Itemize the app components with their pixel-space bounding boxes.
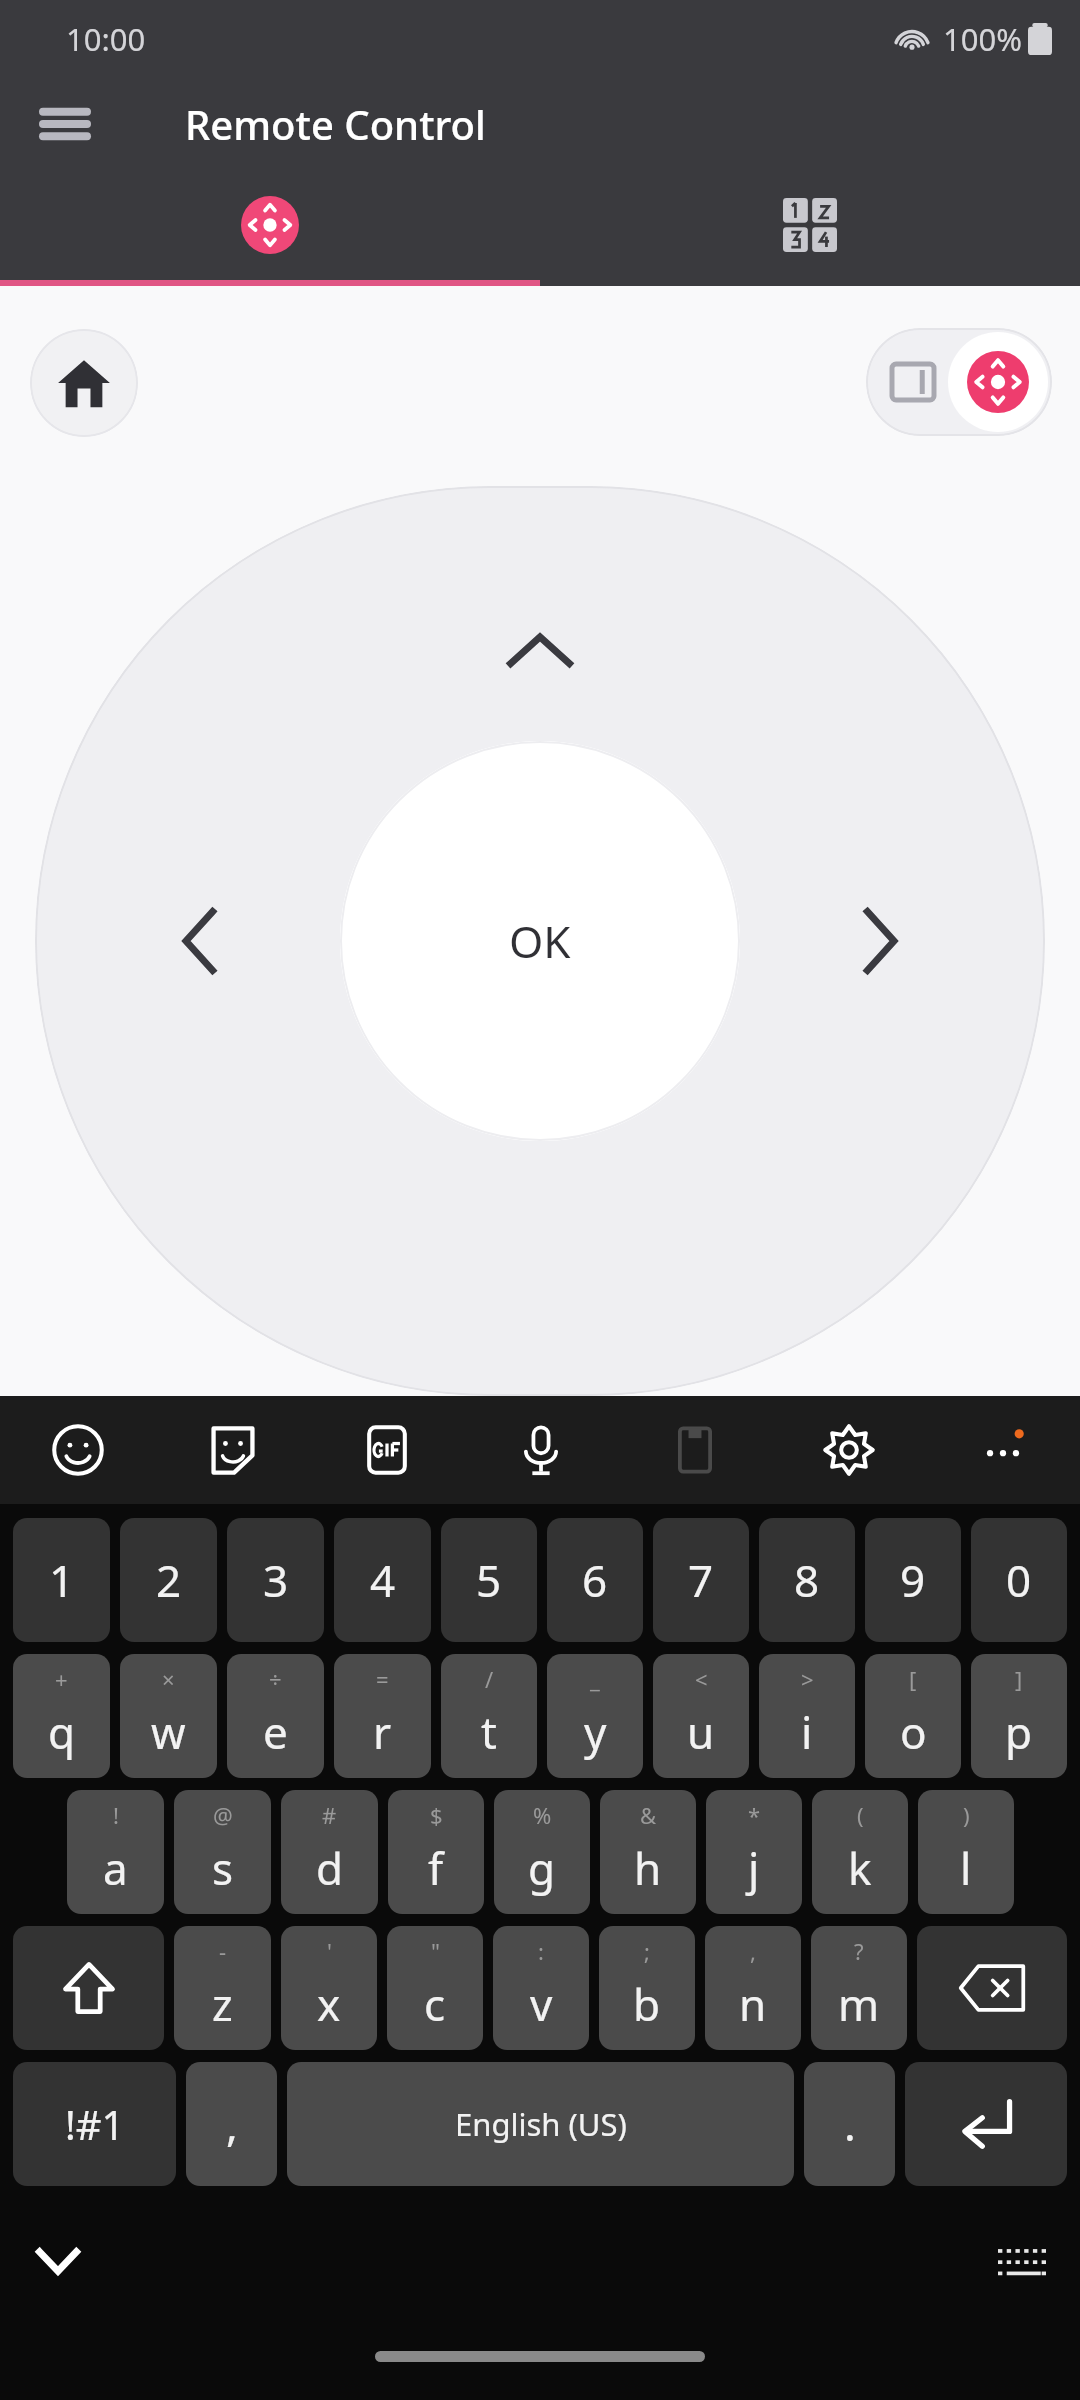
button[interactable]: Control mode toggle [866,328,1052,436]
staticText: w [151,1702,186,1762]
button[interactable]: < [653,1654,749,1778]
button[interactable]: & [600,1790,696,1914]
staticText: f [428,1838,444,1898]
staticText: _ [590,1664,600,1694]
button[interactable]: 9 [865,1518,961,1642]
button[interactable]: OK [340,741,740,1141]
staticText: 6 [582,1550,608,1610]
button[interactable]: * [706,1790,802,1914]
staticText: t [481,1702,497,1762]
button[interactable]: " [387,1926,483,2050]
button[interactable]: 4 [334,1518,431,1642]
button[interactable]: Clipboard [618,1396,772,1504]
button[interactable]: ? [811,1926,907,2050]
button[interactable]: Right [825,886,935,996]
button[interactable]: ; [599,1926,695,2050]
staticText: h [634,1838,662,1898]
button[interactable]: 8 [759,1518,855,1642]
button[interactable]: Menu [36,95,94,153]
staticText: < [695,1664,708,1694]
button[interactable]: ' [281,1926,377,2050]
button[interactable]: 7 [653,1518,749,1642]
staticText: # [322,1800,337,1830]
staticText: u [687,1702,715,1762]
staticText: 2 [156,1550,182,1610]
staticText: : [538,1936,544,1966]
button[interactable]: % [494,1790,590,1914]
button[interactable]: > [759,1654,855,1778]
staticText: v [530,1974,553,2034]
staticText: ! [113,1800,119,1830]
staticText: = [376,1664,389,1694]
button[interactable]: Backspace [917,1926,1067,2050]
staticText: x [317,1974,341,2034]
button[interactable]: , [705,1926,801,2050]
button[interactable]: ) [918,1790,1014,1914]
button[interactable]: Shift [13,1926,164,2050]
staticText: c [424,1974,446,2034]
staticText: % [533,1800,552,1830]
button[interactable]: + [13,1654,110,1778]
staticText: k [848,1838,872,1898]
button[interactable]: English (US) [287,2062,794,2186]
button[interactable]: ! [67,1790,164,1914]
staticText: o [900,1702,927,1762]
staticText: 100% [943,18,1022,60]
staticText: $ [430,1800,443,1830]
button[interactable]: Voice input [464,1396,618,1504]
button[interactable]: ÷ [227,1654,324,1778]
button[interactable]: _ [547,1654,643,1778]
button[interactable]: !#1 [13,2062,176,2186]
button[interactable]: # [281,1790,378,1914]
button[interactable]: Up [485,596,595,706]
button[interactable]: More [926,1396,1080,1504]
button[interactable]: . [804,2062,895,2186]
button[interactable]: ] [971,1654,1067,1778]
staticText: 0 [1006,1550,1032,1610]
button[interactable]: Enter [905,2062,1067,2186]
staticText: " [431,1936,440,1966]
button[interactable]: @ [174,1790,271,1914]
button[interactable]: GIF [310,1396,464,1504]
staticText: ? [854,1936,864,1966]
button[interactable]: Stickers [155,1396,310,1504]
button[interactable]: : [493,1926,589,2050]
button[interactable]: Home [30,329,138,437]
button[interactable]: = [334,1654,431,1778]
button[interactable]: [ [865,1654,961,1778]
staticText: g [528,1838,556,1898]
button[interactable]: , [186,2062,277,2186]
staticText: 7 [688,1550,714,1610]
button[interactable]: 5 [441,1518,537,1642]
button[interactable]: Emoji [0,1396,155,1504]
staticText: e [263,1702,288,1762]
button[interactable]: 3 [227,1518,324,1642]
staticText: - [219,1936,227,1966]
staticText: b [633,1974,661,2034]
button[interactable]: Left [145,886,255,996]
button[interactable]: Change keyboard [990,2229,1054,2293]
staticText: q [48,1702,76,1762]
staticText: 4 [370,1550,396,1610]
button[interactable]: Numeric keypad tab [540,170,1080,280]
staticText: 8 [794,1550,820,1610]
button[interactable]: - [174,1926,271,2050]
staticText: . [844,2094,856,2154]
button[interactable]: $ [388,1790,484,1914]
staticText: 3 [263,1550,289,1610]
button[interactable]: 2 [120,1518,217,1642]
staticText: y [584,1702,607,1762]
button[interactable]: × [120,1654,217,1778]
button[interactable]: 6 [547,1518,643,1642]
button[interactable]: 1 [13,1518,110,1642]
button[interactable]: Hide keyboard [26,2229,90,2293]
button[interactable]: / [441,1654,537,1778]
staticText: m [838,1974,880,2034]
staticText: & [640,1800,657,1830]
button[interactable]: Settings [772,1396,926,1504]
button[interactable]: ( [812,1790,908,1914]
button[interactable]: 0 [971,1518,1067,1642]
staticText: i [801,1702,813,1762]
staticText: , [226,2094,238,2154]
button[interactable]: D-pad tab [0,170,540,280]
